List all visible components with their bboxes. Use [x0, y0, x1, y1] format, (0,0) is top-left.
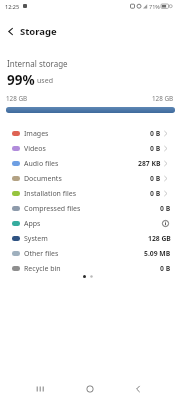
staticText: 0 B [150, 129, 161, 138]
button[interactable]: Installation files [0, 186, 180, 201]
staticText: System [24, 234, 48, 244]
staticText: 128 GB [6, 94, 28, 103]
button[interactable]: Compressed files [0, 201, 180, 216]
staticText: 287 KB [138, 159, 161, 168]
button[interactable] [134, 384, 142, 394]
button[interactable]: Images [0, 126, 180, 141]
staticText: 71% [149, 3, 160, 10]
staticText: 0 B [150, 144, 161, 153]
button[interactable]: System [0, 231, 180, 246]
staticText: 0 B [150, 189, 161, 198]
button[interactable]: Storage [0, 20, 180, 42]
staticText: 128 GB [148, 234, 171, 243]
staticText: Internal storage [7, 58, 68, 69]
staticText: Apps [24, 219, 41, 229]
button[interactable]: Documents [0, 171, 180, 186]
staticText: Recycle bin [24, 264, 61, 274]
button[interactable]: Other files [0, 246, 180, 261]
staticText: Compressed files [24, 204, 81, 214]
button[interactable]: Videos [0, 141, 180, 156]
button[interactable]: Apps [0, 216, 180, 231]
staticText: 99% [7, 71, 35, 89]
staticText: 12:25 [5, 3, 20, 10]
staticText: used [37, 76, 53, 86]
staticText: Storage [20, 25, 57, 38]
staticText: 0 B [160, 204, 171, 213]
staticText: Audio files [24, 159, 59, 169]
button[interactable]: Audio files [0, 156, 180, 171]
staticText: 0 B [150, 174, 161, 183]
staticText: 128 GB [152, 94, 174, 103]
staticText: Documents [24, 174, 62, 184]
staticText: 5.09 MB [144, 249, 171, 258]
button[interactable] [36, 385, 46, 393]
staticText: Installation files [24, 189, 77, 199]
staticText: Other files [24, 249, 59, 259]
staticText: Videos [24, 144, 46, 154]
button[interactable] [85, 384, 95, 394]
staticText: 0 B [160, 264, 171, 273]
button[interactable]: Recycle bin [0, 261, 180, 276]
staticText: Images [24, 129, 49, 139]
